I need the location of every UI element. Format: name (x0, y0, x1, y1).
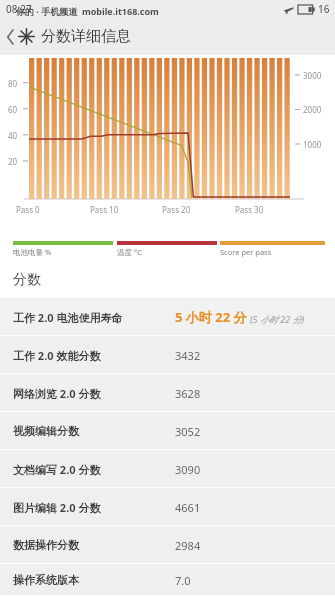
staticText: Pass 30 (235, 204, 264, 215)
staticText: Pass 0 (16, 204, 40, 215)
staticText: 3432 (175, 348, 201, 363)
staticText: 7.0 (175, 573, 191, 588)
staticText: Pass 10 (90, 204, 119, 215)
staticText: 温度 °C (117, 247, 142, 257)
button[interactable]: 网络浏览 2.0 分数 (0, 374, 335, 412)
staticText: 图片编辑 2.0 分数 (13, 500, 101, 515)
staticText: 电池电量 % (13, 247, 52, 257)
staticText: 分数 (13, 271, 41, 289)
staticText: 08:27 (6, 2, 32, 16)
staticText: (5 小时 22 分) (250, 313, 305, 325)
staticText: 文档编写 2.0 分数 (13, 462, 101, 477)
button[interactable]: Back (5, 23, 133, 50)
staticText: 2984 (175, 538, 201, 553)
staticText: 3052 (175, 424, 201, 439)
staticText: 工作 2.0 效能分数 (13, 348, 101, 363)
staticText: 分数详细信息 (41, 27, 131, 46)
staticText: 5 小时 22 分 (175, 308, 247, 326)
button[interactable]: 工作 2.0 电池使用寿命 (0, 298, 335, 336)
staticText: 视频编辑分数 (13, 424, 79, 438)
staticText: 2000 (303, 104, 322, 115)
staticText: 80 (8, 78, 18, 89)
button[interactable]: 数据操作分数 (0, 526, 335, 564)
button[interactable]: 文档编写 2.0 分数 (0, 450, 335, 488)
staticText: 4661 (175, 500, 201, 515)
staticText: 60 (8, 104, 18, 115)
staticText: 3000 (303, 70, 322, 81)
button[interactable]: 视频编辑分数 (0, 412, 335, 450)
staticText: 工作 2.0 电池使用寿命 (13, 310, 123, 325)
staticText: 网络浏览 2.0 分数 (13, 386, 101, 401)
staticText: Score per pass (220, 247, 272, 257)
staticText: 操作系统版本 (13, 573, 79, 587)
staticText: 40 (8, 130, 18, 141)
staticText: 20 (8, 156, 18, 167)
staticText: 3628 (175, 386, 201, 401)
button[interactable]: 操作系统版本 (0, 564, 335, 596)
staticText: Pass 20 (162, 204, 191, 215)
staticText: 3090 (175, 462, 201, 477)
button[interactable]: 图片编辑 2.0 分数 (0, 488, 335, 526)
staticText: 你的 · 手机频道 mobile.it168.com (16, 5, 159, 17)
staticText: 数据操作分数 (13, 538, 79, 552)
button[interactable]: 工作 2.0 效能分数 (0, 336, 335, 374)
staticText: 1000 (303, 139, 322, 150)
staticText: 16 (318, 2, 330, 16)
